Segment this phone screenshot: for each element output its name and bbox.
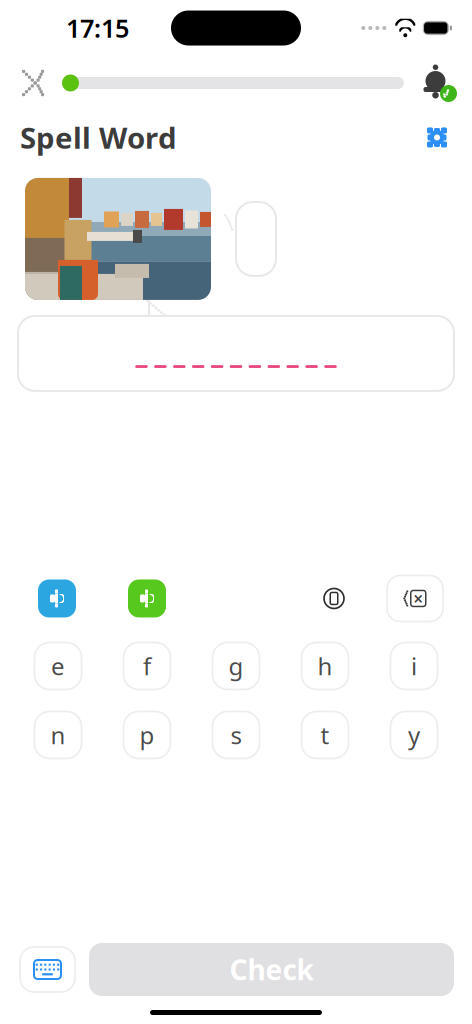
button[interactable]: f (123, 642, 170, 689)
button[interactable]: Haptic feedback (315, 579, 353, 617)
staticText: i (411, 650, 417, 682)
button[interactable]: e (34, 642, 81, 689)
staticText: Spell Word (20, 118, 177, 157)
button[interactable]: p (123, 711, 170, 758)
button[interactable]: Settings (420, 120, 454, 154)
button[interactable]: Notifications (418, 63, 458, 103)
button[interactable]: y (390, 711, 437, 758)
staticText: f (143, 650, 151, 682)
button[interactable]: h (301, 642, 348, 689)
staticText: × (413, 587, 423, 610)
button[interactable]: Check (89, 943, 454, 996)
button[interactable]: Delete letter (387, 575, 443, 621)
staticText: n (50, 719, 65, 751)
staticText: p (139, 719, 154, 751)
button[interactable]: i (390, 642, 437, 689)
button[interactable]: n (34, 711, 81, 758)
button[interactable]: Play slowly (38, 579, 76, 617)
staticText: g (228, 650, 243, 682)
button[interactable]: Close (14, 62, 56, 104)
staticText: h (317, 650, 332, 682)
button[interactable]: g (212, 642, 259, 689)
staticText: Check (229, 951, 313, 988)
button[interactable]: Show keyboard (20, 947, 75, 992)
button[interactable]: s (212, 711, 259, 758)
staticText: e (51, 650, 65, 682)
staticText: s (230, 719, 241, 751)
staticText: y (408, 719, 420, 751)
staticText: t (320, 719, 329, 751)
staticText: 17:15 (66, 11, 129, 45)
button[interactable]: Play audio (128, 579, 166, 617)
button[interactable]: t (301, 711, 348, 758)
